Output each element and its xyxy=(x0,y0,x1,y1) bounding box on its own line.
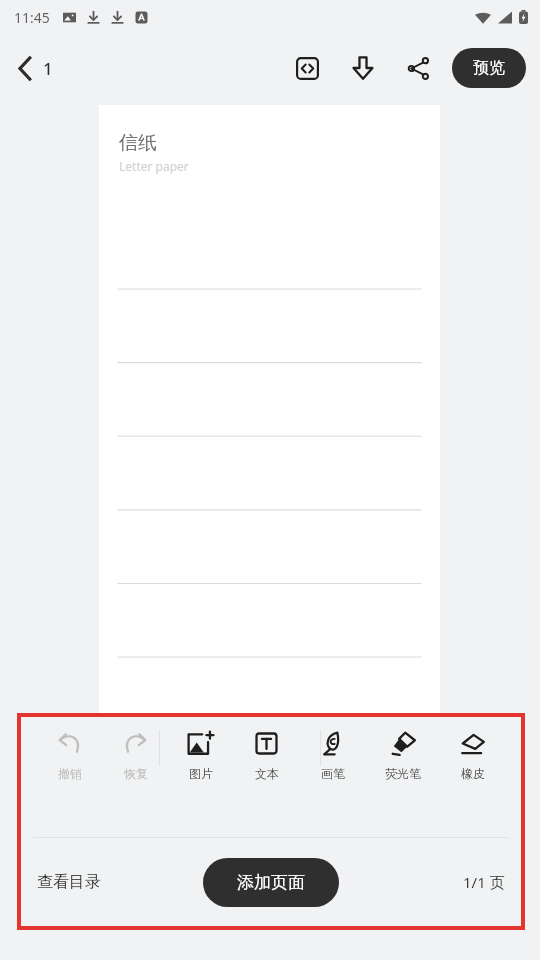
button[interactable]: 预览 xyxy=(452,48,526,88)
staticText: 恢复 xyxy=(124,766,148,781)
staticText: 画笔 xyxy=(321,766,345,781)
button[interactable]: 1/1 页 xyxy=(455,864,513,900)
staticText: 预览 xyxy=(473,58,505,78)
staticText: 11:45 xyxy=(14,8,50,27)
button[interactable]: 查看目录 xyxy=(25,864,113,900)
button[interactable]: 文本 xyxy=(247,728,286,783)
button[interactable]: 撤销 xyxy=(50,728,89,783)
button[interactable]: 图片 xyxy=(181,728,220,783)
button[interactable]: 添加页面 xyxy=(203,858,339,907)
staticText: 1 xyxy=(43,57,53,80)
staticText: 1/1 页 xyxy=(463,872,505,892)
staticText: 查看目录 xyxy=(37,872,101,892)
staticText: 荧光笔 xyxy=(385,766,421,781)
button[interactable]: Download xyxy=(345,49,381,87)
staticText: 橡皮 xyxy=(461,766,485,781)
button[interactable]: 橡皮 xyxy=(453,728,492,783)
button[interactable]: 荧光笔 xyxy=(379,728,427,783)
button[interactable]: 恢复 xyxy=(116,728,155,783)
button[interactable]: Share xyxy=(400,50,437,87)
button[interactable]: 画笔 xyxy=(313,728,352,783)
staticText: 添加页面 xyxy=(237,872,305,893)
button[interactable]: Source code xyxy=(289,50,326,87)
staticText: 撤销 xyxy=(58,766,82,781)
staticText: 信纸 xyxy=(119,131,157,155)
staticText: 图片 xyxy=(189,766,213,781)
staticText: 文本 xyxy=(255,766,279,781)
button[interactable]: Back to page 1 xyxy=(8,51,63,86)
staticText: Letter paper xyxy=(119,158,189,174)
